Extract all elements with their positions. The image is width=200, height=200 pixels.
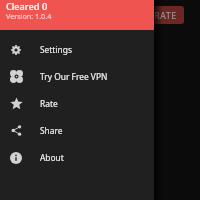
staticText: About	[40, 152, 64, 163]
staticText: Cleared 0	[6, 0, 48, 13]
button[interactable]: Share	[0, 117, 154, 144]
button[interactable]: Settings	[0, 36, 154, 63]
button[interactable]: Rate	[0, 90, 154, 117]
staticText: Rate	[40, 98, 58, 109]
staticText: Share	[40, 125, 63, 136]
button[interactable]: Try Our Free VPN	[0, 63, 154, 90]
staticText: Version: 1.0.4	[6, 11, 52, 21]
button[interactable]: About	[0, 144, 154, 171]
staticText: Settings	[40, 44, 72, 55]
staticText: Try Our Free VPN	[40, 71, 108, 82]
button[interactable]: RATE	[147, 6, 184, 24]
staticText: RATE	[154, 9, 177, 21]
